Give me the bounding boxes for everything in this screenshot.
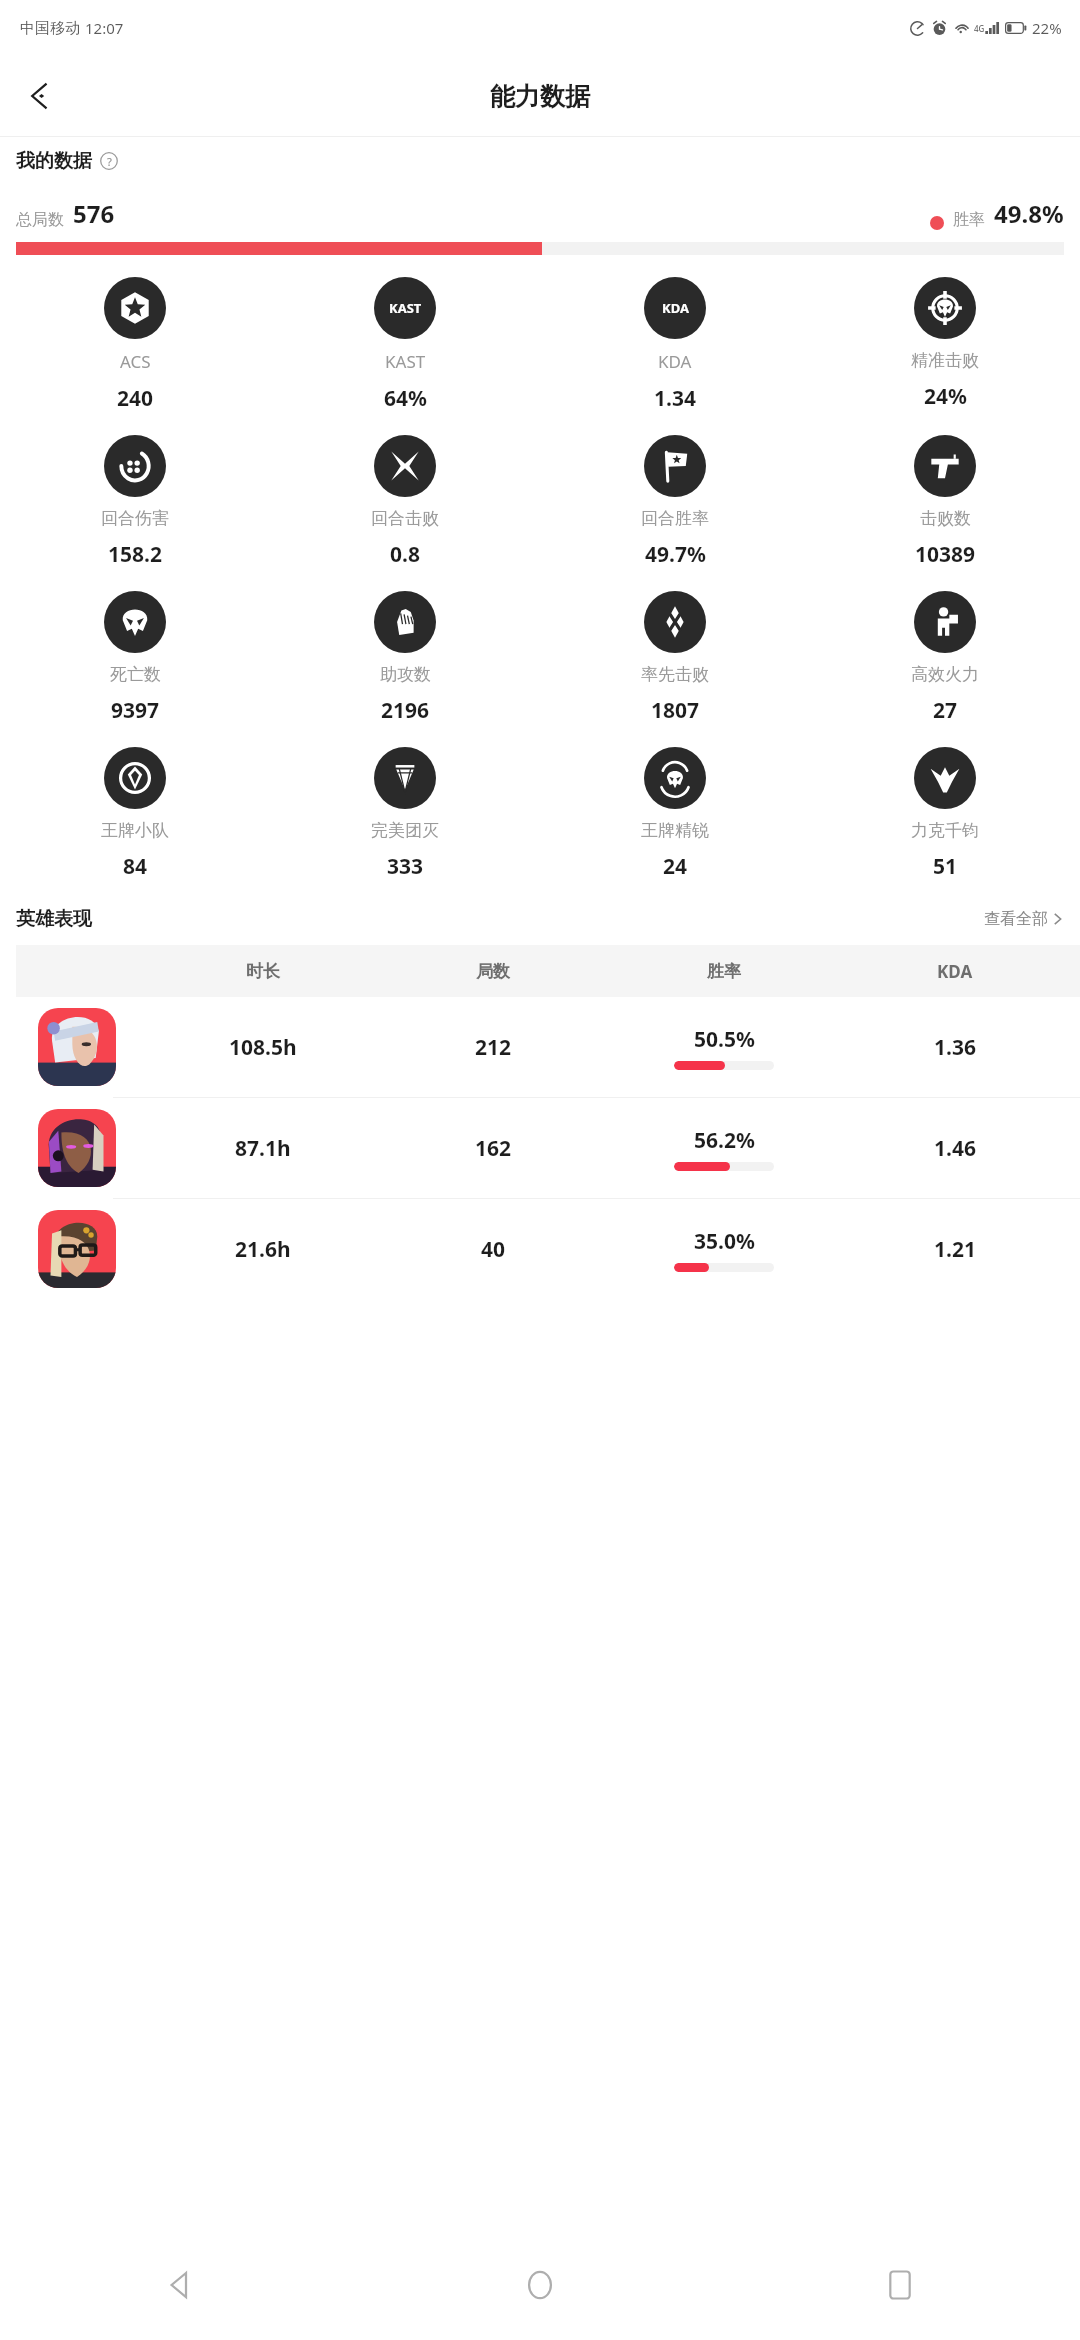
staticText: 回合伤害 (101, 508, 169, 529)
staticText: 击败数 (920, 508, 971, 529)
button[interactable]: 21.6h (0, 1199, 1080, 1299)
staticText: 精准击败 (911, 350, 979, 371)
button[interactable]: 回合伤害 (0, 435, 270, 569)
staticText: 1.21 (934, 1235, 976, 1264)
button[interactable]: 力克千钧 (810, 747, 1080, 881)
staticText: 回合胜率 (641, 508, 709, 529)
staticText: 时长 (246, 961, 280, 982)
staticText: 24% (924, 382, 967, 411)
button[interactable]: 完美团灭 (270, 747, 540, 881)
staticText: KDA (658, 350, 692, 373)
staticText: 56.2% (694, 1126, 755, 1155)
staticText: 51 (933, 852, 958, 881)
staticText: 333 (387, 852, 424, 881)
staticText: 查看全部 (984, 909, 1048, 929)
button[interactable]: 108.5h (0, 997, 1080, 1097)
staticText: 1.36 (934, 1033, 976, 1062)
staticText: 12:07 (85, 18, 124, 38)
staticText: 力克千钧 (911, 820, 979, 841)
staticText: 9397 (111, 696, 160, 725)
staticText: ACS (120, 350, 151, 373)
staticText: 21.6h (235, 1235, 291, 1264)
staticText: 1807 (651, 696, 700, 725)
staticText: 35.0% (694, 1227, 755, 1256)
staticText: 局数 (476, 961, 510, 982)
staticText: 1.34 (654, 384, 696, 413)
staticText: 4G (974, 23, 985, 34)
staticText: 死亡数 (110, 664, 161, 685)
button[interactable]: 率先击败 (540, 591, 810, 725)
staticText: 王牌小队 (101, 820, 169, 841)
button[interactable]: KDA (540, 277, 810, 413)
staticText: 0.8 (390, 540, 420, 569)
staticText: 40 (481, 1235, 506, 1264)
staticText: 576 (73, 197, 115, 230)
staticText: 158.2 (108, 540, 162, 569)
staticText: 64% (384, 384, 427, 413)
staticText: 胜率 (953, 210, 985, 230)
staticText: KAST (389, 299, 422, 317)
button[interactable]: 击败数 (810, 435, 1080, 569)
staticText: 我的数据 (16, 149, 92, 173)
button[interactable]: 助攻数 (270, 591, 540, 725)
staticText: 英雄表现 (16, 907, 92, 931)
staticText: 中国移动 (20, 19, 80, 38)
button[interactable]: 王牌小队 (0, 747, 270, 881)
button[interactable]: 87.1h (0, 1098, 1080, 1198)
staticText: 2196 (381, 696, 430, 725)
button[interactable]: Back (10, 66, 70, 126)
staticText: 49.8% (994, 197, 1064, 230)
button[interactable]: 查看全部 (984, 909, 1064, 929)
staticText: KDA (937, 960, 973, 983)
staticText: 84 (123, 852, 148, 881)
staticText: ? (107, 154, 112, 169)
staticText: 50.5% (694, 1025, 755, 1054)
button[interactable]: ACS (0, 277, 270, 413)
staticText: 87.1h (235, 1134, 291, 1163)
button[interactable]: Home (360, 2230, 720, 2340)
staticText: KAST (385, 350, 426, 373)
button[interactable]: 精准击败 (810, 277, 1080, 411)
staticText: 能力数据 (490, 81, 590, 112)
button[interactable]: 回合击败 (270, 435, 540, 569)
staticText: 240 (117, 384, 154, 413)
staticText: 22% (1032, 18, 1062, 38)
staticText: KDA (662, 299, 689, 317)
staticText: 27 (933, 696, 958, 725)
button[interactable]: 回合胜率 (540, 435, 810, 569)
staticText: 108.5h (229, 1033, 297, 1062)
staticText: 10389 (915, 540, 976, 569)
staticText: 胜率 (707, 961, 741, 982)
button[interactable]: Recent apps (720, 2230, 1080, 2340)
button[interactable]: 王牌精锐 (540, 747, 810, 881)
button[interactable]: 高效火力 (810, 591, 1080, 725)
button[interactable]: 死亡数 (0, 591, 270, 725)
staticText: 212 (475, 1033, 512, 1062)
staticText: 完美团灭 (371, 820, 439, 841)
staticText: 49.7% (645, 540, 706, 569)
staticText: 1.46 (934, 1134, 976, 1163)
staticText: 回合击败 (371, 508, 439, 529)
button[interactable]: KAST (270, 277, 540, 413)
staticText: 王牌精锐 (641, 820, 709, 841)
button[interactable]: Help (99, 151, 119, 171)
staticText: 高效火力 (911, 664, 979, 685)
staticText: 率先击败 (641, 664, 709, 685)
staticText: 助攻数 (380, 664, 431, 685)
staticText: 162 (475, 1134, 512, 1163)
staticText: 总局数 (16, 210, 64, 230)
staticText: 24 (663, 852, 688, 881)
button[interactable]: Back (0, 2230, 360, 2340)
